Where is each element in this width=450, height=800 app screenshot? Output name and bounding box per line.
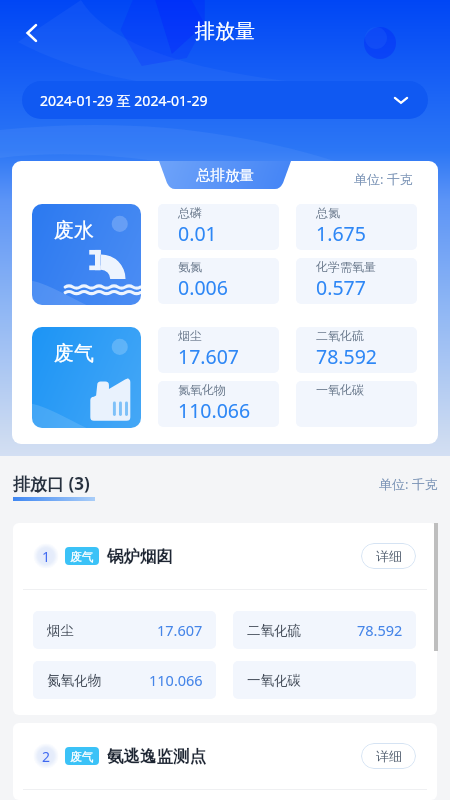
staticText: 氮氧化物 — [178, 382, 226, 397]
button[interactable]: 2024-01-29 至 2024-01-29 — [22, 81, 428, 119]
staticText: 烟尘 — [47, 622, 74, 639]
staticText: 78.592 — [316, 343, 377, 370]
staticText: 2024-01-29 至 2024-01-29 — [40, 91, 208, 110]
staticText: 排放量 — [195, 19, 255, 44]
staticText: 氨氮 — [178, 259, 202, 274]
staticText: 废气 — [70, 749, 94, 764]
button[interactable]: 详细 — [361, 743, 416, 769]
staticText: 详细 — [376, 748, 402, 764]
staticText: 110.066 — [178, 397, 251, 424]
staticText: 1.675 — [316, 220, 366, 247]
staticText: 二氧化硫 — [247, 622, 301, 639]
staticText: 总排放量 — [196, 166, 254, 184]
staticText: 总磷 — [178, 205, 202, 220]
staticText: 2 — [42, 747, 51, 766]
staticText: 总氮 — [316, 205, 340, 220]
staticText: 17.607 — [157, 620, 203, 640]
staticText: 110.066 — [149, 670, 203, 690]
staticText: 详细 — [376, 548, 402, 564]
staticText: 单位: 千克 — [354, 170, 413, 188]
staticText: 烟尘 — [178, 328, 202, 343]
button[interactable]: 废水 — [32, 204, 141, 305]
staticText: 氮氧化物 — [47, 672, 101, 689]
button[interactable]: 2 — [13, 723, 437, 789]
staticText: 化学需氧量 — [316, 259, 376, 274]
staticText: 二氧化硫 — [316, 328, 364, 343]
button[interactable]: Back — [12, 13, 52, 53]
staticText: 废水 — [54, 218, 94, 243]
staticText: 废气 — [70, 549, 94, 564]
staticText: 17.607 — [178, 343, 239, 370]
button[interactable]: 废气 — [32, 327, 141, 428]
staticText: 0.577 — [316, 274, 366, 301]
staticText: 78.592 — [357, 620, 403, 640]
staticText: 锅炉烟囱 — [107, 546, 173, 567]
button[interactable]: 详细 — [361, 543, 416, 569]
staticText: 排放口 (3) — [13, 472, 90, 495]
staticText: 一氧化碳 — [247, 672, 301, 689]
staticText: 1 — [42, 547, 51, 566]
staticText: 氨逃逸监测点 — [107, 746, 206, 767]
staticText: 一氧化碳 — [316, 382, 364, 397]
button[interactable]: 1 — [13, 523, 437, 589]
staticText: 废气 — [54, 341, 94, 366]
staticText: 0.01 — [178, 220, 217, 247]
staticText: 单位: 千克 — [379, 475, 438, 493]
staticText: 0.006 — [178, 274, 228, 301]
